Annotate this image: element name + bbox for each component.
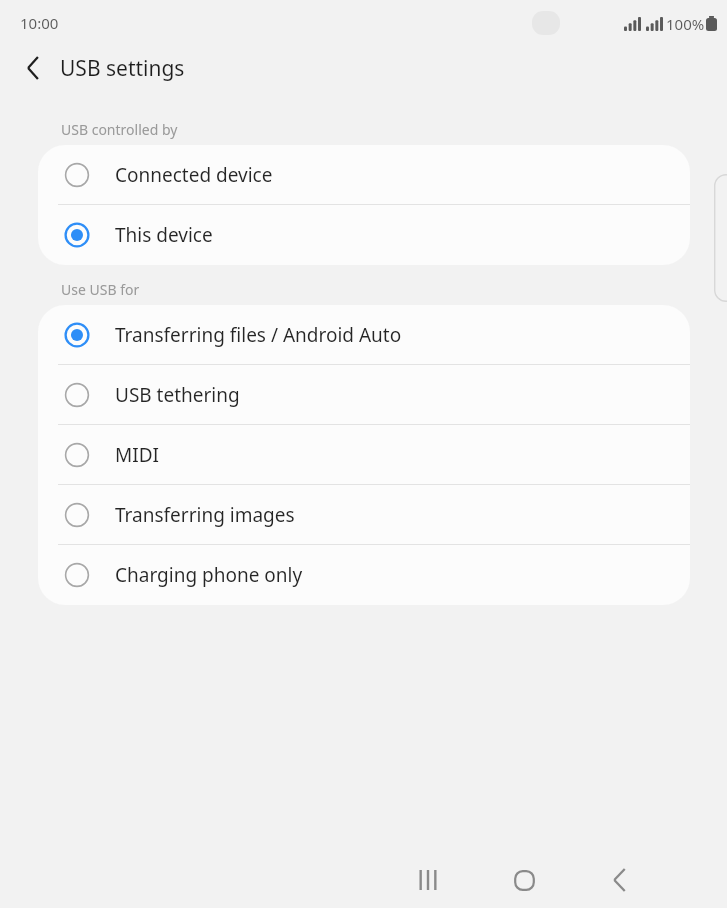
button[interactable]: Transferring images — [38, 485, 690, 545]
button[interactable]: Charging phone only — [38, 545, 690, 605]
staticText: Transferring images — [115, 502, 295, 528]
button[interactable]: Navigate up — [11, 46, 55, 90]
staticText: USB controlled by — [61, 120, 178, 139]
staticText: 100% — [666, 14, 705, 34]
staticText: Transferring files / Android Auto — [115, 322, 402, 348]
staticText: Charging phone only — [115, 562, 303, 588]
staticText: Use USB for — [61, 280, 140, 299]
button[interactable]: MIDI — [38, 425, 690, 485]
button[interactable]: Transferring files / Android Auto — [38, 305, 690, 365]
staticText: MIDI — [115, 442, 159, 468]
staticText: USB tethering — [115, 382, 240, 408]
button[interactable]: This device — [38, 205, 690, 265]
button[interactable]: Back — [595, 856, 643, 904]
staticText: 10:00 — [20, 13, 59, 33]
button[interactable]: Home — [500, 856, 548, 904]
button[interactable]: Recents — [404, 856, 452, 904]
staticText: USB settings — [60, 54, 185, 83]
staticText: This device — [115, 222, 213, 248]
button[interactable]: Connected device — [38, 145, 690, 205]
button[interactable]: USB tethering — [38, 365, 690, 425]
staticText: Connected device — [115, 162, 273, 188]
